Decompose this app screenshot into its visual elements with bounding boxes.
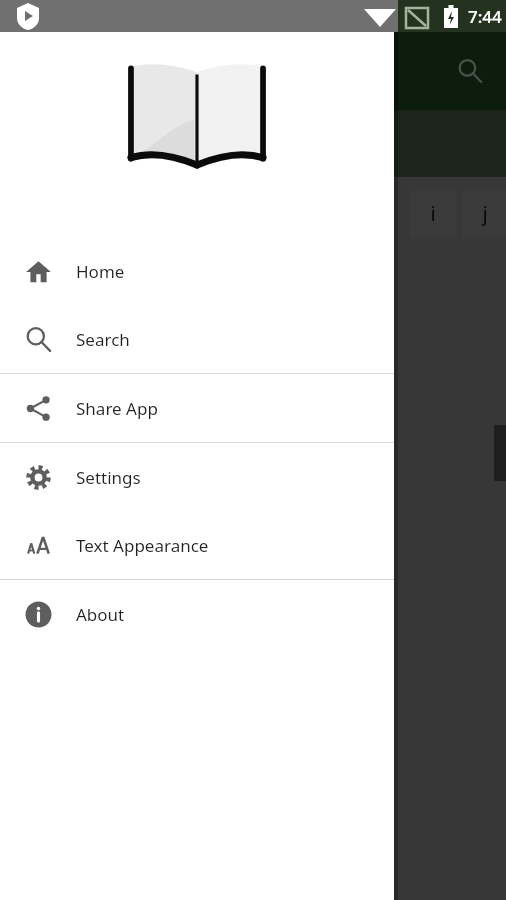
button[interactable]: Search [446, 47, 494, 95]
staticText: j [482, 201, 488, 227]
button[interactable]: Search [0, 305, 394, 373]
button[interactable]: Share App [0, 374, 394, 442]
staticText: About [76, 603, 125, 626]
staticText: Share App [76, 397, 158, 420]
button[interactable]: Home [0, 237, 394, 305]
button[interactable]: j [462, 191, 506, 237]
button[interactable]: Text Appearance [0, 511, 394, 579]
button[interactable]: i [410, 191, 456, 237]
staticText: Home [76, 260, 125, 283]
button[interactable]: About [0, 580, 394, 648]
staticText: Text Appearance [76, 534, 209, 557]
staticText: i [430, 201, 436, 227]
staticText: Settings [76, 466, 141, 489]
staticText: 7:44 [468, 5, 502, 28]
button[interactable]: Settings [0, 443, 394, 511]
staticText: Search [76, 328, 130, 351]
